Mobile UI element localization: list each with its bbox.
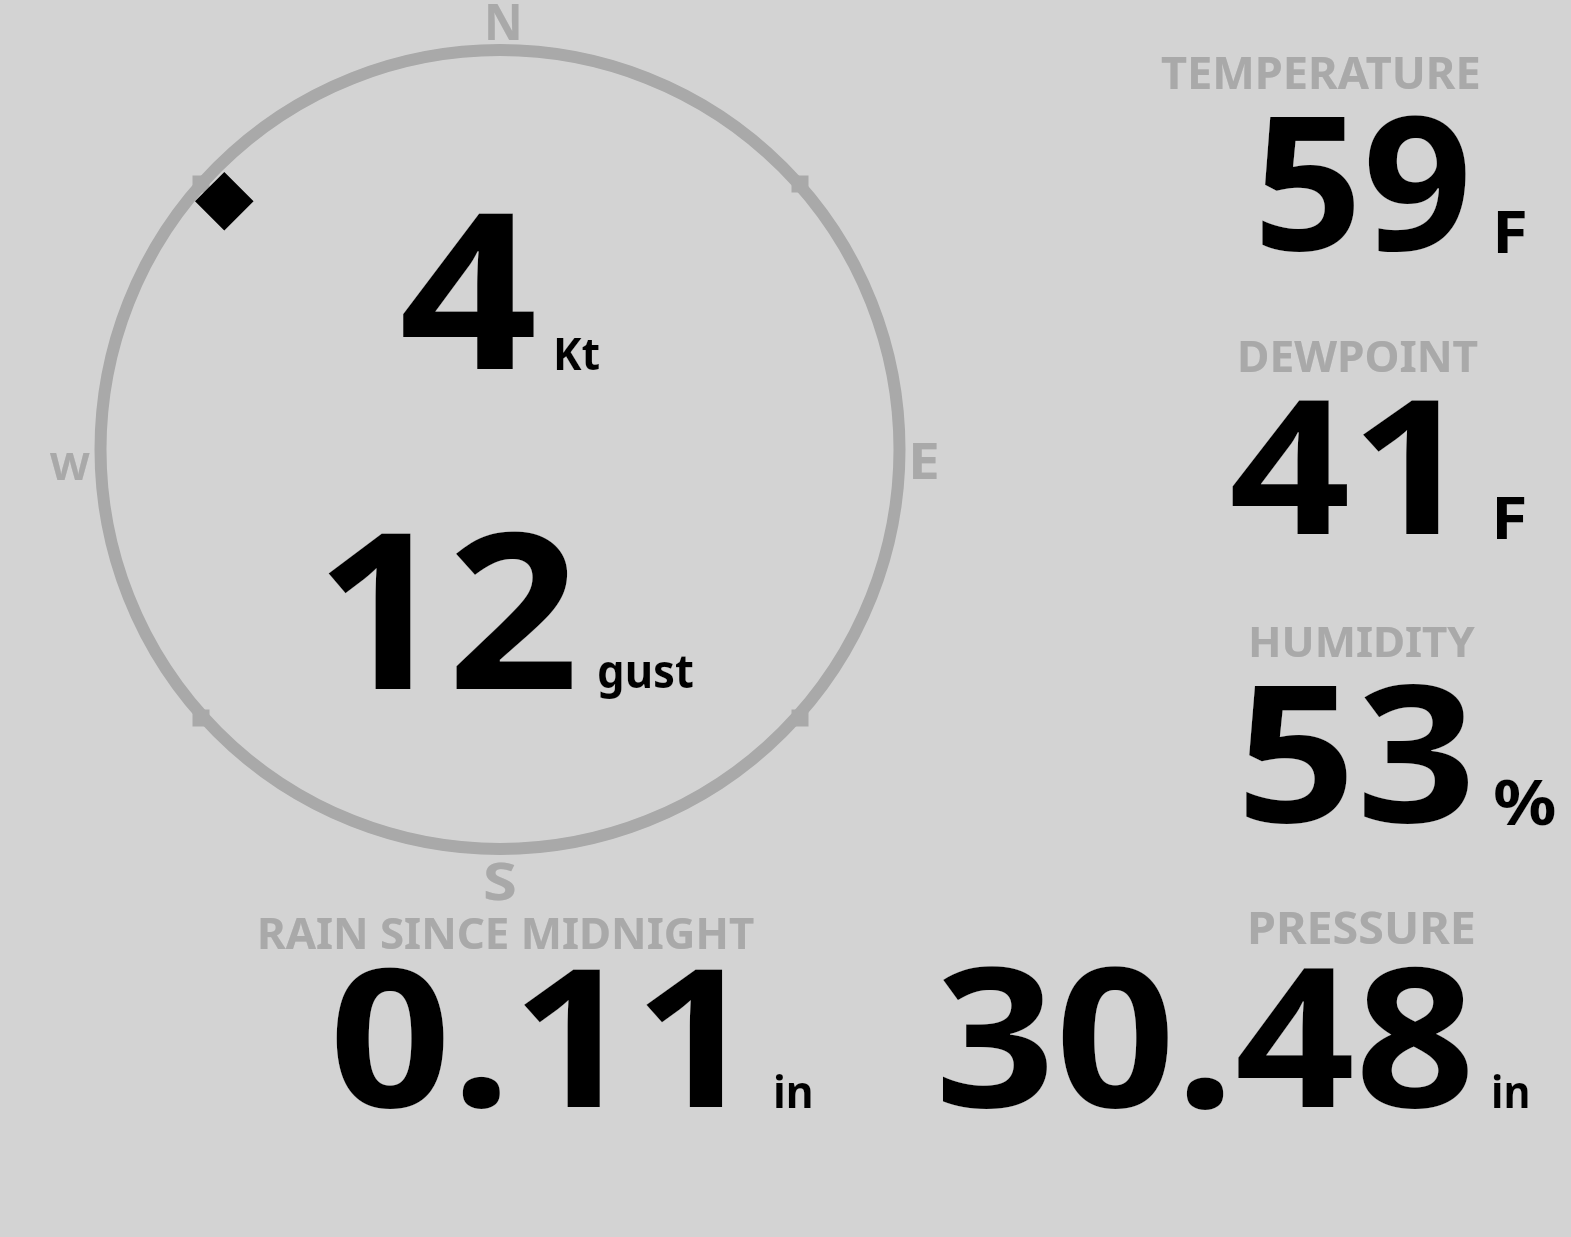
button[interactable]: Wind direction compass (0, 0, 1571, 1237)
staticText: 0.11 (329, 901, 757, 1164)
staticText: Kt (553, 322, 601, 383)
staticText: N (484, 0, 523, 55)
staticText: HUMIDITY (1248, 612, 1475, 669)
staticText: TEMPERATURE (1161, 42, 1481, 102)
staticText: F (1492, 190, 1529, 270)
staticText: 41 (1229, 334, 1472, 589)
staticText: DEWPOINT (1237, 326, 1479, 385)
staticText: 53 (1236, 618, 1477, 878)
staticText: 12 (315, 456, 580, 753)
staticText: RAIN SINCE MIDNIGHT (257, 903, 755, 962)
staticText: 4 (399, 136, 538, 433)
staticText: F (1491, 476, 1528, 556)
staticText: W (50, 440, 90, 490)
staticText: in (1491, 1060, 1531, 1121)
staticText: % (1493, 758, 1557, 844)
staticText: PRESSURE (1247, 897, 1477, 957)
staticText: in (773, 1061, 814, 1121)
staticText: 30.48 (935, 900, 1476, 1164)
staticText: 59 (1253, 50, 1472, 305)
staticText: S (483, 844, 517, 915)
staticText: gust (597, 639, 695, 702)
staticText: E (908, 426, 940, 494)
